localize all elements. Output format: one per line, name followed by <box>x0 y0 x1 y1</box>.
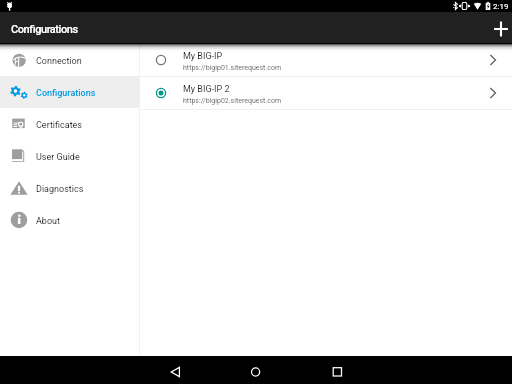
staticText: 2:19 <box>493 2 509 11</box>
staticText: Connection <box>36 56 82 67</box>
button[interactable]: Recent apps <box>323 356 351 384</box>
staticText: About <box>36 216 60 227</box>
button[interactable]: Certificates <box>0 108 139 140</box>
staticText: Certificates <box>36 120 82 131</box>
button[interactable]: Add configuration <box>481 12 512 43</box>
button[interactable]: Connection <box>0 44 139 76</box>
staticText: User Guide <box>36 152 80 163</box>
button[interactable]: User Guide <box>0 140 139 172</box>
button[interactable]: My BIG-IP 2 <box>140 77 512 109</box>
button[interactable]: Home <box>241 356 269 384</box>
button[interactable]: Diagnostics <box>0 172 139 204</box>
staticText: Configurations <box>36 88 96 99</box>
staticText: Diagnostics <box>36 184 84 195</box>
staticText: My BIG-IP 2 <box>183 84 230 95</box>
staticText: My BIG-IP <box>183 51 223 62</box>
button[interactable]: Open My BIG-IP 2 <box>480 77 512 109</box>
button[interactable]: Open My BIG-IP <box>480 44 512 76</box>
button[interactable]: Back <box>162 356 190 384</box>
staticText: Configurations <box>11 23 78 36</box>
button[interactable]: Configurations <box>0 76 139 108</box>
button[interactable]: My BIG-IP <box>140 44 512 76</box>
staticText: https://bigip01.siterequest.com <box>183 64 282 72</box>
staticText: https://bigip02.siterequest.com <box>183 97 282 105</box>
button[interactable]: About <box>0 204 139 236</box>
